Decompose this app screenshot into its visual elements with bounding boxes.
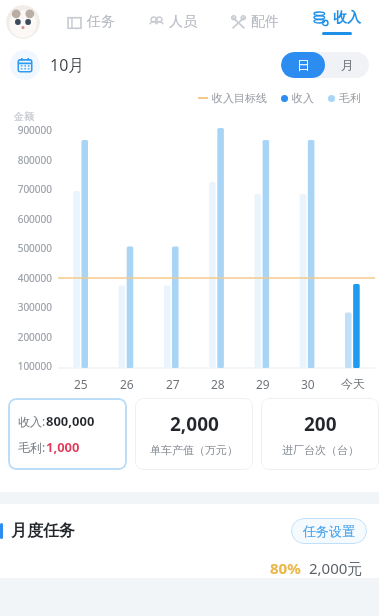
staticText: 10月 xyxy=(50,54,85,76)
staticText: 900000 xyxy=(17,123,52,137)
staticText: 80% xyxy=(270,558,301,578)
staticText: 200000 xyxy=(17,330,52,344)
staticText: 500000 xyxy=(17,241,52,255)
staticText: 月 xyxy=(341,57,354,73)
button[interactable]: 月 xyxy=(325,52,369,78)
staticText: 收入目标线 xyxy=(212,91,267,105)
staticText: 人员 xyxy=(169,13,197,31)
button[interactable]: Calendar xyxy=(10,50,40,80)
button[interactable]: 收入 xyxy=(295,0,377,44)
staticText: 收入: xyxy=(18,413,46,429)
staticText: 毛利: xyxy=(18,439,46,455)
button[interactable]: 配件 xyxy=(213,0,295,44)
staticText: 日 xyxy=(297,57,310,73)
staticText: 30 xyxy=(301,376,315,392)
staticText: 600000 xyxy=(17,212,52,226)
staticText: 29 xyxy=(256,376,270,392)
staticText: 今天 xyxy=(341,376,365,391)
staticText: 配件 xyxy=(251,13,279,31)
staticText: 任务 xyxy=(87,13,115,31)
staticText: 25 xyxy=(74,376,88,392)
staticText: 月度任务 xyxy=(11,521,75,541)
staticText: 单车产值（万元） xyxy=(150,443,238,457)
button[interactable]: Profile avatar xyxy=(6,5,40,39)
button[interactable]: 日 xyxy=(281,52,325,78)
staticText: 27 xyxy=(166,376,180,392)
button[interactable]: 2,000 xyxy=(135,398,253,470)
staticText: 2,000元 xyxy=(309,558,363,578)
staticText: 2,000 xyxy=(170,411,219,437)
staticText: 26 xyxy=(120,376,134,392)
button[interactable]: 200 xyxy=(261,398,379,470)
staticText: 700000 xyxy=(17,182,52,196)
staticText: 800,000 xyxy=(46,412,95,430)
button[interactable]: 任务 xyxy=(50,0,131,44)
staticText: 100000 xyxy=(17,359,52,373)
staticText: 1,000 xyxy=(46,438,80,456)
staticText: 28 xyxy=(211,376,225,392)
staticText: 金额 xyxy=(14,110,34,123)
button[interactable]: 人员 xyxy=(131,0,213,44)
staticText: 400000 xyxy=(17,271,52,285)
staticText: 300000 xyxy=(17,300,52,314)
staticText: 毛利 xyxy=(339,91,361,105)
staticText: 任务设置 xyxy=(303,523,355,539)
staticText: 200 xyxy=(304,411,337,437)
button[interactable]: 任务设置 xyxy=(291,518,367,544)
staticText: 收入 xyxy=(333,9,361,27)
staticText: 800000 xyxy=(17,153,52,167)
button[interactable]: 收入: xyxy=(8,398,127,470)
staticText: 收入 xyxy=(292,91,314,105)
staticText: 进厂台次（台） xyxy=(282,443,359,457)
